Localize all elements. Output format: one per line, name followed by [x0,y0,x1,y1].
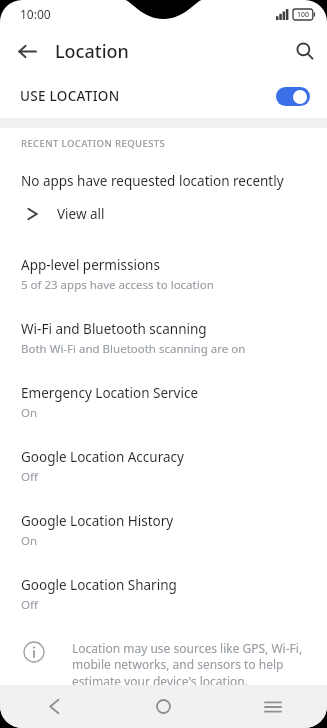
staticText: 100 [297,10,310,20]
button[interactable]: Recent apps [218,685,327,728]
button[interactable]: Back [0,685,109,728]
button[interactable]: Wi-Fi and Bluetooth scanning [0,306,327,370]
staticText: Google Location History [21,512,174,530]
staticText: USE LOCATION [20,87,276,105]
button[interactable]: App-level permissions [0,242,327,306]
staticText: Both Wi-Fi and Bluetooth scanning are on [21,341,246,357]
staticText: App-level permissions [21,256,160,274]
staticText: No apps have requested location recently [21,172,284,190]
staticText: Location [55,39,129,64]
button[interactable]: Google Location Accuracy [0,434,327,498]
staticText: Location may use sources like GPS, Wi-Fi… [72,640,311,690]
staticText: Google Location Accuracy [21,448,184,466]
button[interactable]: Search [286,32,324,70]
staticText: Google Location Sharing [21,576,177,594]
button[interactable]: Google Location Sharing [0,562,327,626]
staticText: On [21,405,38,421]
staticText: Wi-Fi and Bluetooth scanning [21,320,207,338]
staticText: RECENT LOCATION REQUESTS [21,137,166,150]
button[interactable]: Emergency Location Service [0,370,327,434]
staticText: 10:00 [20,6,51,22]
staticText: On [21,533,38,549]
staticText: Off [21,469,38,485]
button[interactable]: Back [8,32,46,70]
button[interactable]: Google Location History [0,498,327,562]
staticText: View all [57,205,105,223]
button[interactable]: View all [0,190,327,238]
staticText: Emergency Location Service [21,384,199,402]
staticText: Off [21,597,38,613]
button[interactable]: USE LOCATION [0,74,327,118]
button[interactable]: Home [109,685,218,728]
staticText: 5 of 23 apps have access to location [21,277,214,293]
